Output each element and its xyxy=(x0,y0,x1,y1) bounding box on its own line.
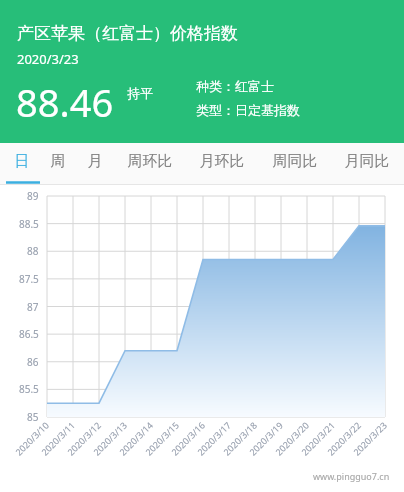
button[interactable] xyxy=(265,143,325,185)
button[interactable] xyxy=(192,143,252,185)
button[interactable] xyxy=(42,143,74,185)
button[interactable] xyxy=(120,143,180,185)
button[interactable] xyxy=(337,143,397,185)
button[interactable] xyxy=(6,143,38,185)
button[interactable] xyxy=(79,143,111,185)
